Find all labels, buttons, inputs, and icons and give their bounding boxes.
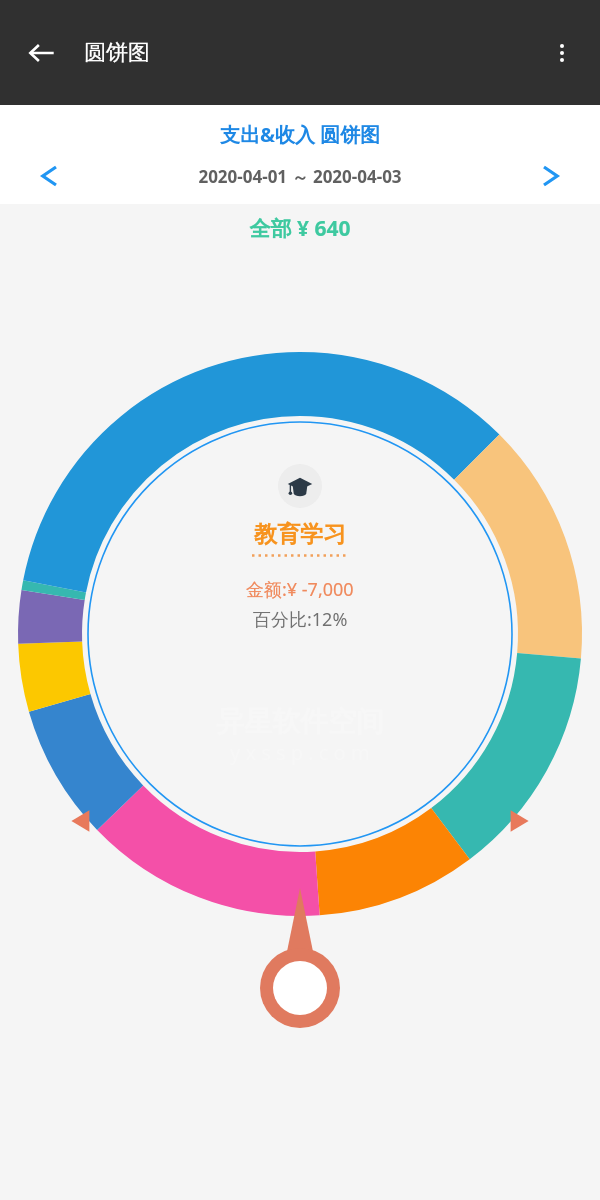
- staticText: 全部 ¥ 640: [0, 214, 600, 243]
- button[interactable]: Previous period: [18, 148, 82, 204]
- button[interactable]: Back: [14, 25, 70, 81]
- button[interactable]: Next category: [492, 794, 546, 848]
- staticText: 百分比:12%: [253, 607, 348, 632]
- staticText: 2020-04-01 ～ 2020-04-03: [82, 165, 518, 188]
- button[interactable]: Previous category: [54, 794, 108, 848]
- staticText: 金额:¥ -7,000: [246, 577, 354, 602]
- button[interactable]: More options: [536, 27, 588, 79]
- staticText: 圆饼图: [84, 39, 150, 67]
- staticText: 支出&收入 圆饼图: [0, 121, 600, 148]
- button[interactable]: Next period: [518, 148, 582, 204]
- staticText: 教育学习: [254, 520, 346, 549]
